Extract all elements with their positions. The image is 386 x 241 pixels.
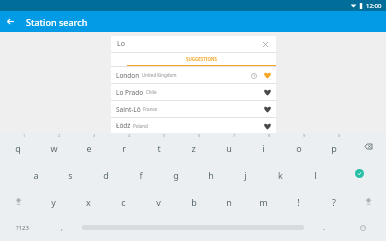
staticText: t	[157, 142, 161, 154]
staticText: ?	[332, 196, 336, 208]
button[interactable]: x	[71, 187, 106, 214]
staticText: Poland	[133, 123, 148, 129]
staticText: 6	[198, 133, 201, 138]
staticText: y	[51, 196, 56, 208]
staticText: n	[226, 196, 232, 208]
staticText: o	[296, 142, 302, 154]
button[interactable]: d	[88, 160, 123, 187]
button[interactable]: London	[111, 67, 276, 83]
staticText: .	[323, 223, 325, 233]
button[interactable]: h	[193, 160, 228, 187]
button[interactable]: ?123	[0, 214, 45, 241]
button[interactable]: !	[281, 187, 316, 214]
staticText: Lo	[117, 39, 125, 49]
button[interactable]: 3	[71, 133, 106, 160]
button[interactable]: 2	[36, 133, 71, 160]
button[interactable]: ?	[316, 187, 351, 214]
button[interactable]: m	[246, 187, 281, 214]
button[interactable]: Lo	[111, 36, 276, 52]
staticText: 9	[303, 133, 306, 138]
button[interactable]: Recent	[248, 70, 259, 81]
button[interactable]: a	[18, 160, 53, 187]
button[interactable]: Backspace	[351, 133, 386, 160]
staticText: d	[103, 169, 109, 181]
button[interactable]: Łódź	[111, 118, 276, 133]
button[interactable]: y	[36, 187, 71, 214]
button[interactable]: b	[176, 187, 211, 214]
staticText: Chile	[146, 89, 157, 95]
button[interactable]: Favorite	[261, 86, 273, 98]
button[interactable]: 0	[316, 133, 351, 160]
staticText: f	[139, 169, 143, 181]
button[interactable]: SUGGESTIONS	[127, 53, 276, 66]
staticText: 4	[128, 133, 131, 138]
staticText: 12:00	[366, 2, 382, 10]
staticText: 1	[23, 133, 26, 138]
button[interactable]: Favorite	[261, 120, 273, 132]
button[interactable]: 4	[106, 133, 141, 160]
button[interactable]: g	[158, 160, 193, 187]
button[interactable]: f	[123, 160, 158, 187]
button[interactable]: Shift	[0, 187, 36, 214]
staticText: x	[86, 196, 91, 208]
staticText: r	[122, 142, 126, 154]
staticText: v	[156, 196, 161, 208]
button[interactable]: Back	[0, 11, 21, 32]
button[interactable]: Enter	[333, 160, 386, 187]
staticText: 7	[233, 133, 236, 138]
button[interactable]: Emoji	[340, 214, 386, 241]
staticText: k	[278, 169, 283, 181]
button[interactable]: Space	[78, 214, 307, 241]
staticText: Station search	[26, 16, 88, 28]
button[interactable]: s	[53, 160, 88, 187]
button[interactable]: v	[141, 187, 176, 214]
button[interactable]: Favorite	[261, 103, 273, 115]
button[interactable]: Clear	[258, 37, 272, 51]
staticText: z	[191, 142, 196, 154]
staticText: London	[116, 71, 140, 80]
staticText: w	[50, 142, 58, 154]
staticText: Lo Prado	[116, 88, 144, 97]
button[interactable]: Favorite	[261, 69, 273, 81]
staticText: u	[226, 142, 232, 154]
staticText: 2	[58, 133, 61, 138]
button[interactable]: n	[211, 187, 246, 214]
button[interactable]: Saint-Lô	[111, 101, 276, 117]
staticText: i	[262, 142, 265, 154]
button[interactable]: k	[263, 160, 298, 187]
button[interactable]: Shift	[351, 187, 386, 214]
button[interactable]: 7	[211, 133, 246, 160]
staticText: !	[297, 196, 300, 208]
staticText: ?123	[16, 224, 29, 232]
staticText: e	[86, 142, 92, 154]
button[interactable]: 5	[141, 133, 176, 160]
staticText: s	[68, 169, 73, 181]
staticText: Łódź	[116, 121, 131, 130]
staticText: Saint-Lô	[116, 105, 141, 114]
staticText: c	[121, 196, 126, 208]
button[interactable]: 9	[281, 133, 316, 160]
staticText: France	[143, 106, 158, 112]
button[interactable]: c	[106, 187, 141, 214]
staticText: b	[191, 196, 197, 208]
staticText: ,	[61, 223, 63, 233]
button[interactable]: l	[298, 160, 333, 187]
button[interactable]: 1	[0, 133, 36, 160]
staticText: q	[15, 142, 21, 154]
button[interactable]: j	[228, 160, 263, 187]
staticText: h	[208, 169, 214, 181]
staticText: m	[259, 196, 268, 208]
staticText: 8	[268, 133, 271, 138]
button[interactable]: 8	[246, 133, 281, 160]
staticText: l	[314, 169, 317, 181]
staticText: 5	[163, 133, 166, 138]
button[interactable]: Lo Prado	[111, 84, 276, 100]
staticText: SUGGESTIONS	[186, 56, 217, 62]
staticText: p	[331, 142, 337, 154]
staticText: a	[33, 169, 39, 181]
staticText: g	[173, 169, 179, 181]
button[interactable]: 6	[176, 133, 211, 160]
staticText: 3	[93, 133, 96, 138]
